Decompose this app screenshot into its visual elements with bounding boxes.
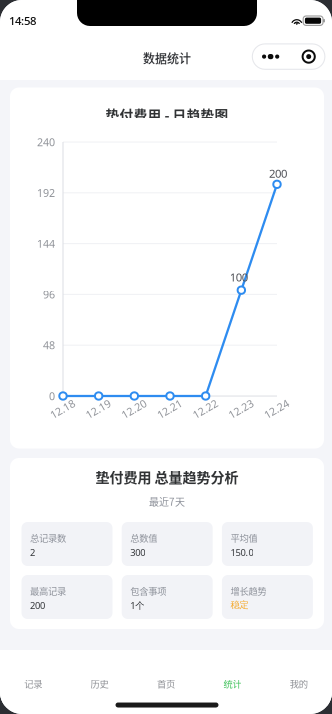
button[interactable]: 我的 <box>266 661 332 705</box>
staticText: 12.21 <box>156 402 183 416</box>
staticText: 最高记录 <box>30 584 66 597</box>
staticText: 1个 <box>130 599 144 612</box>
staticText: 12.19 <box>85 402 112 416</box>
staticText: 200 <box>269 166 287 181</box>
staticText: 0 <box>49 389 55 403</box>
staticText: 稳定 <box>230 599 248 611</box>
staticText: 300 <box>130 546 145 559</box>
staticText: 12.18 <box>49 402 76 416</box>
staticText: 垫付费用 - 日趋势图 <box>105 105 228 124</box>
staticText: 240 <box>37 135 55 149</box>
staticText: 总记录数 <box>30 531 66 544</box>
staticText: 96 <box>43 287 55 302</box>
staticText: 12.24 <box>263 402 290 416</box>
staticText: 48 <box>43 338 55 352</box>
staticText: 12.22 <box>192 402 219 416</box>
button[interactable]: 历史 <box>66 661 133 705</box>
button[interactable]: 首页 <box>133 661 199 705</box>
staticText: 150.0 <box>230 546 253 559</box>
button[interactable]: 记录 <box>0 661 66 705</box>
button[interactable]: 统计 <box>199 661 266 705</box>
staticText: 12.20 <box>120 402 147 416</box>
staticText: 192 <box>37 185 55 200</box>
staticText: 12.23 <box>227 402 254 416</box>
staticText: 首页 <box>157 677 175 690</box>
staticText: 我的 <box>290 677 308 690</box>
staticText: 144 <box>37 236 55 251</box>
staticText: 数据统计 <box>143 49 191 67</box>
staticText: 100 <box>230 269 248 285</box>
button[interactable]: More options <box>252 44 325 69</box>
staticText: 增长趋势 <box>230 584 266 597</box>
staticText: 统计 <box>223 677 241 690</box>
staticText: 平均值 <box>230 531 257 544</box>
staticText: 14:58 <box>9 13 36 28</box>
staticText: 历史 <box>91 677 109 690</box>
staticText: 总数值 <box>130 531 157 544</box>
staticText: 垫付费用 总量趋势分析 <box>95 466 238 487</box>
staticText: 200 <box>30 599 45 612</box>
staticText: 包含事项 <box>130 584 166 597</box>
staticText: 记录 <box>24 677 42 690</box>
staticText: 2 <box>30 546 35 559</box>
staticText: 最近7天 <box>149 494 185 509</box>
